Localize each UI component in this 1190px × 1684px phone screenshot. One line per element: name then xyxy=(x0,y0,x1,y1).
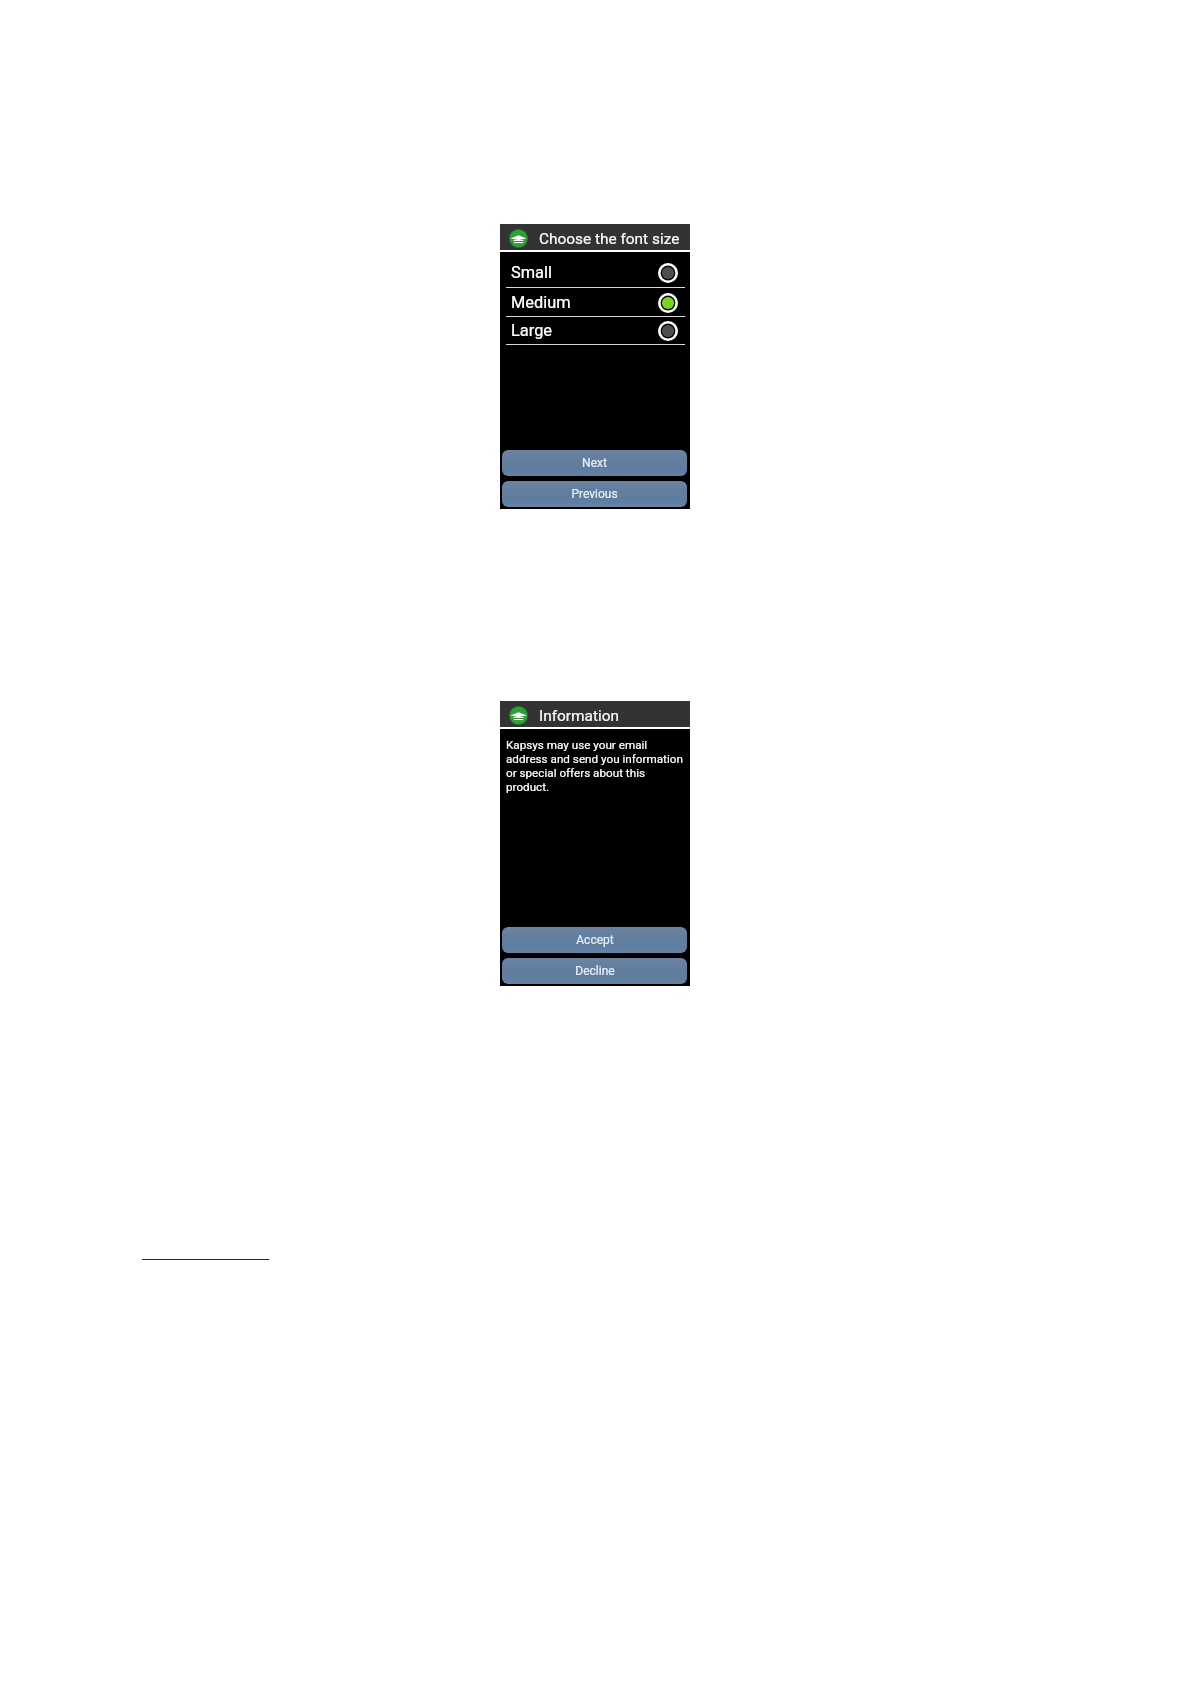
staticText: Accept xyxy=(576,933,614,947)
staticText: Kapsys may use your email address and se… xyxy=(506,738,687,794)
staticText: Information xyxy=(539,707,619,725)
button[interactable]: Decline xyxy=(502,958,687,984)
staticText: Large xyxy=(511,321,553,340)
staticText: Previous xyxy=(571,487,618,501)
button[interactable]: Previous xyxy=(502,481,687,507)
button[interactable]: Next xyxy=(502,450,687,476)
button[interactable]: Accept xyxy=(502,927,687,953)
button[interactable]: Small xyxy=(500,258,690,287)
staticText: Choose the font size xyxy=(539,230,680,248)
staticText: Small xyxy=(511,263,552,282)
staticText: Next xyxy=(582,456,607,470)
staticText: Medium xyxy=(511,293,571,312)
button[interactable]: Large xyxy=(500,316,690,345)
staticText: Decline xyxy=(575,964,615,978)
button[interactable]: Medium xyxy=(500,288,690,317)
